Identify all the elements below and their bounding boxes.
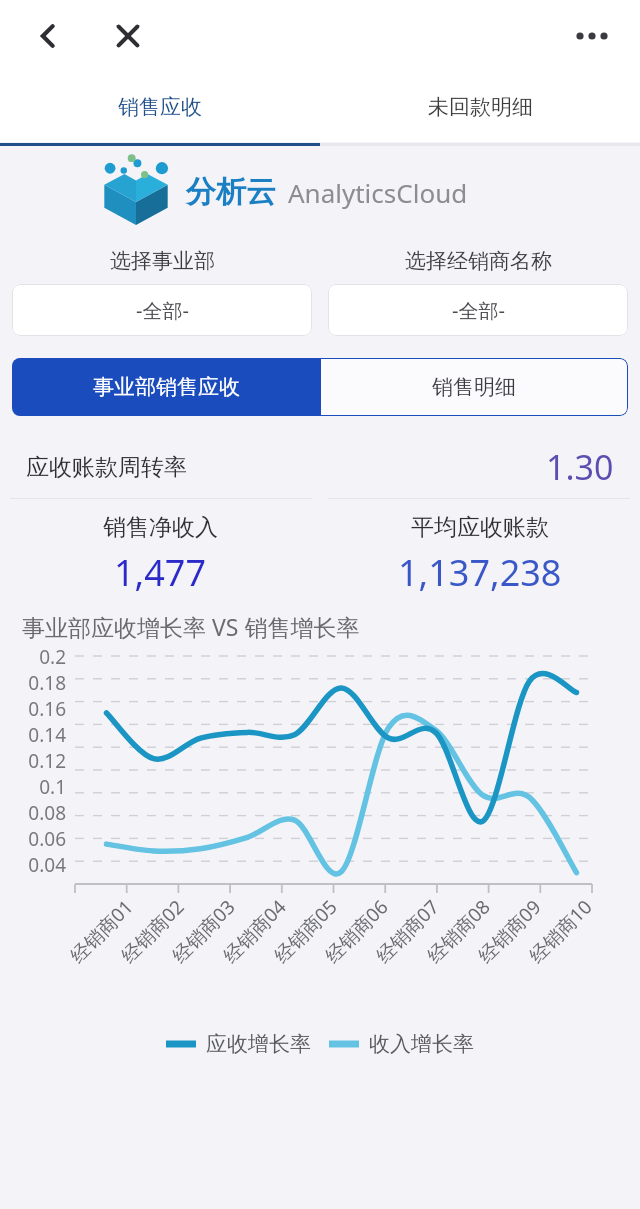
staticText: 0.14: [28, 722, 66, 748]
staticText: 经销商03: [166, 894, 241, 968]
staticText: 经销商06: [319, 894, 394, 968]
staticText: 1,477: [114, 548, 207, 597]
staticText: 应收增长率: [206, 1031, 311, 1057]
staticText: 1,137,238: [398, 548, 562, 597]
staticText: 选择经销商名称: [405, 248, 552, 274]
staticText: 事业部销售应收: [93, 374, 240, 400]
staticText: 0.12: [28, 748, 66, 774]
staticText: 经销商04: [217, 894, 292, 968]
staticText: 1.30: [546, 444, 614, 490]
staticText: 分析云: [186, 173, 276, 211]
button[interactable]: Close: [104, 12, 152, 60]
staticText: 经销商01: [64, 894, 139, 968]
staticText: 平均应收账款: [411, 513, 549, 542]
staticText: 0.06: [28, 826, 66, 852]
button[interactable]: Back: [24, 12, 72, 60]
staticText: 0.18: [28, 670, 66, 696]
staticText: 0.16: [28, 696, 66, 722]
staticText: 经销商07: [370, 894, 445, 968]
staticText: 经销商02: [115, 894, 190, 968]
staticText: 经销商05: [268, 894, 343, 968]
button[interactable]: 销售应收: [0, 72, 320, 142]
staticText: 未回款明细: [428, 94, 533, 120]
staticText: AnalyticsCloud: [288, 175, 468, 210]
staticText: 销售应收: [118, 94, 202, 120]
staticText: -全部-: [136, 297, 189, 324]
staticText: 销售净收入: [103, 513, 218, 542]
button[interactable]: 未回款明细: [320, 72, 640, 142]
staticText: 0.1: [39, 774, 66, 800]
button[interactable]: 销售明细: [320, 358, 628, 416]
staticText: 0.2: [39, 644, 66, 670]
staticText: 0.08: [28, 800, 66, 826]
button[interactable]: -全部-: [12, 284, 312, 336]
staticText: 经销商08: [421, 894, 496, 968]
staticText: 收入增长率: [369, 1031, 474, 1057]
staticText: 经销商09: [472, 894, 547, 968]
staticText: 0.04: [28, 852, 66, 878]
staticText: 选择事业部: [110, 248, 215, 274]
button[interactable]: 事业部销售应收: [12, 358, 320, 416]
button[interactable]: More options: [564, 8, 620, 64]
staticText: 销售明细: [432, 374, 516, 400]
staticText: 事业部应收增长率 VS 销售增长率: [22, 611, 360, 642]
button[interactable]: -全部-: [328, 284, 628, 336]
staticText: 经销商10: [523, 894, 598, 968]
staticText: 应收账款周转率: [26, 453, 187, 482]
staticText: -全部-: [452, 297, 505, 324]
